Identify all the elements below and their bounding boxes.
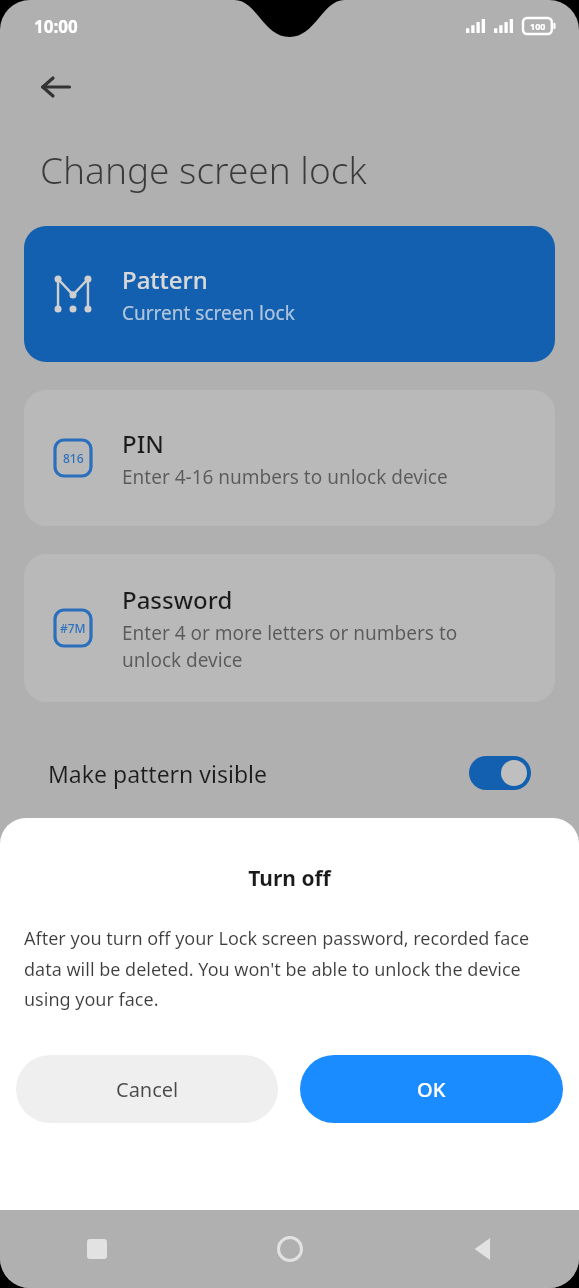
staticText: Enter 4 or more letters or numbers to un… xyxy=(122,620,515,673)
staticText: Password xyxy=(122,583,233,616)
staticText: Cancel xyxy=(116,1076,179,1103)
staticText: Enter 4-16 numbers to unlock device xyxy=(122,464,448,490)
staticText: Current screen lock xyxy=(122,300,295,326)
staticText: 100 xyxy=(530,20,546,32)
button[interactable]: OK xyxy=(300,1055,563,1123)
staticText: Turn off xyxy=(0,864,579,893)
button[interactable]: 816 xyxy=(24,390,555,526)
staticText: PIN xyxy=(122,427,164,460)
button[interactable]: Home xyxy=(268,1227,312,1271)
button[interactable]: Back xyxy=(461,1227,505,1271)
staticText: 816 xyxy=(63,450,84,466)
button[interactable]: #7M xyxy=(24,554,555,702)
button[interactable]: Cancel xyxy=(16,1055,278,1123)
staticText: #7M xyxy=(60,620,86,636)
button[interactable]: Make pattern visible xyxy=(0,738,579,808)
button[interactable]: Recents xyxy=(75,1227,119,1271)
staticText: OK xyxy=(417,1076,446,1103)
staticText: Make pattern visible xyxy=(48,758,267,789)
staticText: After you turn off your Lock screen pass… xyxy=(24,926,555,1011)
staticText: 10:00 xyxy=(34,15,78,38)
button[interactable]: Back xyxy=(30,61,82,113)
staticText: Change screen lock xyxy=(40,144,367,194)
staticText: Pattern xyxy=(122,263,208,296)
button[interactable]: Pattern xyxy=(24,226,555,362)
